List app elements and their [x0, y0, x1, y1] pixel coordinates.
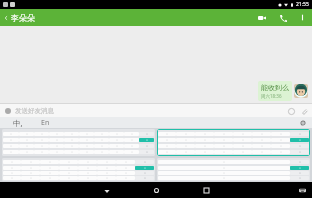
button[interactable]: [3, 159, 154, 180]
button[interactable]: [290, 171, 309, 175]
button[interactable]: [139, 150, 154, 154]
button[interactable]: [135, 176, 154, 180]
button[interactable]: Video call: [255, 11, 268, 24]
button[interactable]: Home: [150, 184, 163, 197]
button[interactable]: Attach file: [299, 106, 309, 116]
button[interactable]: En: [38, 117, 53, 128]
button[interactable]: More options: [297, 12, 308, 23]
button[interactable]: Keyboard settings: [298, 118, 308, 128]
button[interactable]: 能收到么: [258, 81, 292, 101]
button[interactable]: [158, 130, 309, 155]
button[interactable]: [139, 132, 154, 136]
button[interactable]: [135, 166, 154, 170]
button[interactable]: Switch keyboard: [297, 185, 308, 196]
button[interactable]: 中,: [10, 117, 26, 128]
button[interactable]: Recent apps: [200, 184, 213, 197]
button[interactable]: [158, 159, 309, 180]
button[interactable]: Voice call: [276, 11, 289, 24]
button[interactable]: [290, 160, 309, 164]
button[interactable]: [135, 160, 154, 164]
button[interactable]: [290, 132, 309, 136]
button[interactable]: Emoji: [286, 106, 296, 116]
button[interactable]: [290, 138, 309, 142]
button[interactable]: [290, 150, 309, 154]
button[interactable]: Back: [100, 184, 113, 197]
button[interactable]: [139, 138, 154, 142]
button[interactable]: [290, 166, 309, 170]
button[interactable]: [290, 176, 309, 180]
button[interactable]: [139, 144, 154, 148]
